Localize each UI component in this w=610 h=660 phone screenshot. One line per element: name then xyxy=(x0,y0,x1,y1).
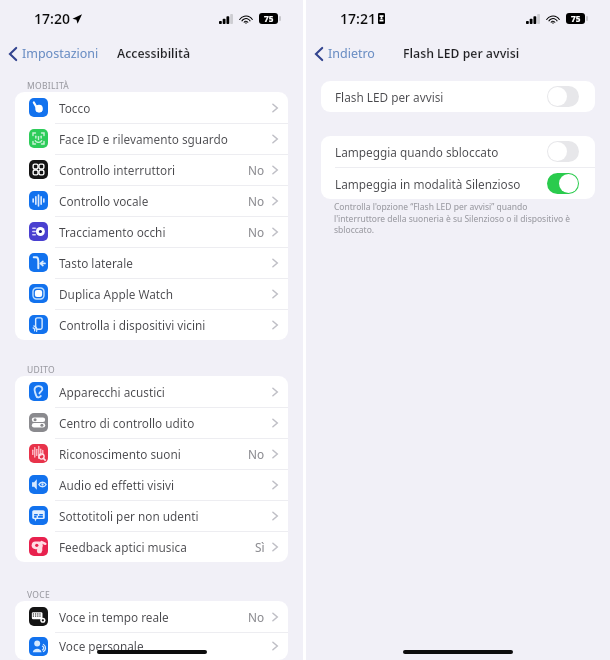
staticText: Controlla l'opzione “Flash LED per avvis… xyxy=(334,201,580,236)
staticText: Tasto laterale xyxy=(59,255,133,271)
staticText: No xyxy=(248,609,265,625)
button[interactable]: Tracciamento occhi xyxy=(15,216,288,247)
staticText: Duplica Apple Watch xyxy=(59,286,173,302)
other: Disattivato xyxy=(547,86,579,107)
staticText: Apparecchi acustici xyxy=(59,384,165,400)
staticText: Flash LED per avvisi xyxy=(335,89,444,105)
button[interactable]: Lampeggia quando sbloccato xyxy=(321,136,595,167)
staticText: 75 xyxy=(264,13,274,24)
staticText: 75 xyxy=(571,13,581,24)
button[interactable]: Controllo interruttori xyxy=(15,154,288,185)
staticText: Flash LED per avvisi xyxy=(403,45,520,62)
button[interactable]: Centro di controllo udito xyxy=(15,407,288,438)
button[interactable]: Lampeggia in modalità Silenzioso xyxy=(321,168,595,199)
button[interactable]: Feedback aptici musica xyxy=(15,531,288,562)
staticText: Indietro xyxy=(328,45,375,62)
staticText: Voce in tempo reale xyxy=(59,609,169,625)
staticText: Voce personale xyxy=(59,638,144,654)
button[interactable]: Flash LED per avvisi xyxy=(321,81,595,112)
staticText: No xyxy=(248,162,265,178)
staticText: Accessibilità xyxy=(117,45,191,62)
staticText: No xyxy=(248,193,265,209)
button[interactable]: Impostazioni xyxy=(9,45,99,62)
staticText: Impostazioni xyxy=(22,45,99,62)
staticText: Sottotitoli per non udenti xyxy=(59,508,199,524)
staticText: 17:21 xyxy=(340,9,376,28)
staticText: Feedback aptici musica xyxy=(59,539,187,555)
staticText: Controlla i dispositivi vicini xyxy=(59,317,206,333)
staticText: Lampeggia in modalità Silenzioso xyxy=(335,176,521,192)
button[interactable]: Audio ed effetti visivi xyxy=(15,469,288,500)
staticText: Lampeggia quando sbloccato xyxy=(335,144,499,160)
other: Attivato xyxy=(547,173,579,194)
staticText: Controllo interruttori xyxy=(59,162,176,178)
button[interactable]: Sottotitoli per non udenti xyxy=(15,500,288,531)
staticText: No xyxy=(248,446,265,462)
staticText: VOCE xyxy=(27,589,50,601)
button[interactable]: Riconoscimento suoni xyxy=(15,438,288,469)
staticText: Controllo vocale xyxy=(59,193,149,209)
button[interactable]: Face ID e rilevamento sguardo xyxy=(15,123,288,154)
button[interactable]: Apparecchi acustici xyxy=(15,376,288,407)
staticText: Riconoscimento suoni xyxy=(59,446,181,462)
button[interactable]: Controlla i dispositivi vicini xyxy=(15,309,288,340)
staticText: Tocco xyxy=(59,100,91,116)
staticText: No xyxy=(248,224,265,240)
button[interactable]: Duplica Apple Watch xyxy=(15,278,288,309)
staticText: 17:20 xyxy=(34,9,70,28)
staticText: Tracciamento occhi xyxy=(59,224,166,240)
button[interactable]: Voce in tempo reale xyxy=(15,601,288,632)
staticText: Face ID e rilevamento sguardo xyxy=(59,131,228,147)
button[interactable]: Indietro xyxy=(315,45,375,62)
staticText: Centro di controllo udito xyxy=(59,415,195,431)
staticText: UDITO xyxy=(27,364,55,376)
staticText: MOBILITÀ xyxy=(27,80,70,92)
button[interactable]: Tasto laterale xyxy=(15,247,288,278)
button[interactable]: Tocco xyxy=(15,92,288,123)
button[interactable]: Voce personale xyxy=(15,632,288,660)
button[interactable]: Controllo vocale xyxy=(15,185,288,216)
staticText: Audio ed effetti visivi xyxy=(59,477,175,493)
other: Disattivato xyxy=(547,141,579,162)
staticText: Sì xyxy=(255,539,265,555)
